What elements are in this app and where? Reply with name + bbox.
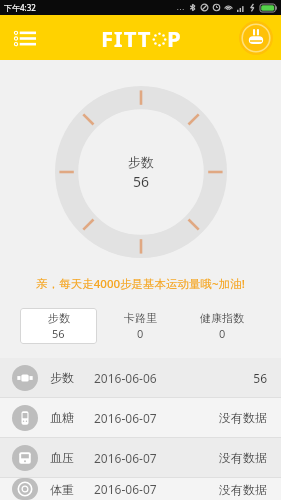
staticText: 没有数据 [219,410,267,425]
button[interactable]: 体重 [0,478,281,500]
button[interactable]: 血压 [0,438,281,477]
staticText: 2016-06-07 [94,410,219,426]
button[interactable]: 血糖 [0,398,281,437]
button[interactable]: Menu [10,23,40,53]
staticText: FITT [101,23,152,53]
staticText: 下午4:32 [4,2,36,13]
staticText: 56 [253,370,267,386]
staticText: 没有数据 [219,482,267,497]
staticText: 步数 [50,370,86,385]
staticText: 0 [137,326,144,341]
staticText: 没有数据 [219,450,267,465]
staticText: 卡路里 [124,311,157,325]
button[interactable]: 卡路里 [101,308,179,344]
staticText: 血压 [50,450,86,465]
staticText: 血糖 [50,410,86,425]
staticText: 2016-06-07 [94,481,219,497]
button[interactable]: Profile [239,21,273,55]
button[interactable]: 步数 [0,358,281,397]
button[interactable]: 步数 [20,308,97,344]
staticText: 56 [133,172,150,191]
staticText: P [167,23,181,53]
staticText: 步数 [48,311,70,325]
staticText: 健康指数 [200,311,244,325]
staticText: 0 [219,326,226,341]
staticText: 亲，每天走4000步是基本运动量哦~加油! [0,276,281,292]
staticText: 56 [52,326,65,341]
staticText: 2016-06-06 [94,370,253,386]
staticText: 2016-06-07 [94,450,219,466]
button[interactable]: 健康指数 [183,308,261,344]
staticText: 步数 [128,154,154,170]
staticText: 体重 [50,482,86,497]
